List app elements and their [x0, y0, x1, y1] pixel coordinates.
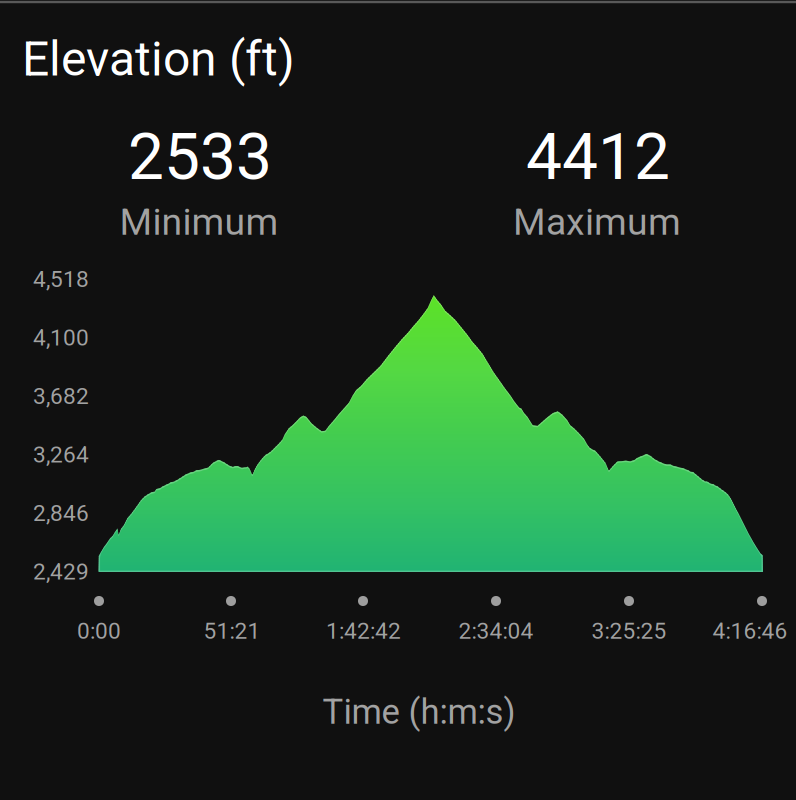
- staticText: Elevation (ft): [22, 31, 295, 87]
- staticText: 3:25:25: [591, 618, 666, 644]
- staticText: 4,100: [33, 324, 89, 351]
- staticText: Minimum: [119, 200, 278, 244]
- staticText: 2:34:04: [458, 618, 533, 644]
- staticText: Time (h:m:s): [322, 692, 515, 732]
- staticText: 4:16:46: [712, 618, 787, 644]
- staticText: 2533: [128, 119, 272, 194]
- staticText: 2,846: [33, 500, 89, 526]
- staticText: Maximum: [513, 200, 681, 244]
- staticText: 2,429: [33, 558, 89, 585]
- staticText: 4,518: [33, 266, 89, 292]
- staticText: 1:42:42: [326, 618, 401, 644]
- staticText: 3,264: [33, 441, 89, 468]
- staticText: 51:21: [203, 618, 260, 644]
- staticText: 3,682: [33, 383, 89, 409]
- staticText: 0:00: [77, 618, 121, 644]
- staticText: 4412: [526, 119, 670, 194]
